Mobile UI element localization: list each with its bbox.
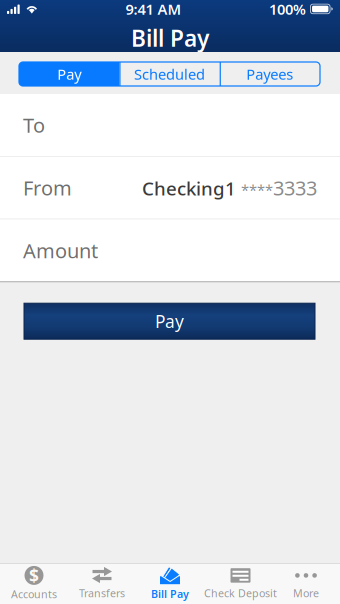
staticText: Bill Pay <box>131 23 209 53</box>
button[interactable]: From <box>0 157 340 219</box>
staticText: $ <box>29 564 39 587</box>
staticText: Accounts <box>11 587 57 601</box>
staticText: Amount <box>23 237 98 264</box>
button[interactable]: Check Deposit <box>204 563 272 604</box>
button[interactable]: Amount <box>0 219 340 281</box>
button[interactable]: To <box>0 94 340 156</box>
button[interactable]: Transfers <box>68 563 136 604</box>
button[interactable]: Scheduled <box>119 62 220 86</box>
staticText: More <box>293 586 319 600</box>
staticText: Scheduled <box>134 64 205 84</box>
button[interactable]: Pay <box>19 62 119 86</box>
staticText: To <box>23 112 45 138</box>
staticText: Check Deposit <box>204 586 277 600</box>
staticText: From <box>23 174 72 201</box>
staticText: Pay <box>155 310 184 333</box>
button[interactable]: Bill Pay <box>136 563 204 604</box>
button[interactable]: Payees <box>220 62 320 86</box>
staticText: 3333 <box>273 174 317 201</box>
staticText: **** <box>241 180 273 199</box>
staticText: Bill Pay <box>151 587 189 601</box>
staticText: Pay <box>57 64 81 84</box>
staticText: Checking1 <box>142 176 236 201</box>
button[interactable]: Pay <box>24 303 315 339</box>
staticText: 100% <box>269 0 306 19</box>
button[interactable]: $ <box>0 563 68 604</box>
staticText: Payees <box>246 64 293 84</box>
button[interactable]: More <box>272 563 340 604</box>
staticText: 9:41 AM <box>125 0 181 19</box>
staticText: Transfers <box>79 586 125 600</box>
